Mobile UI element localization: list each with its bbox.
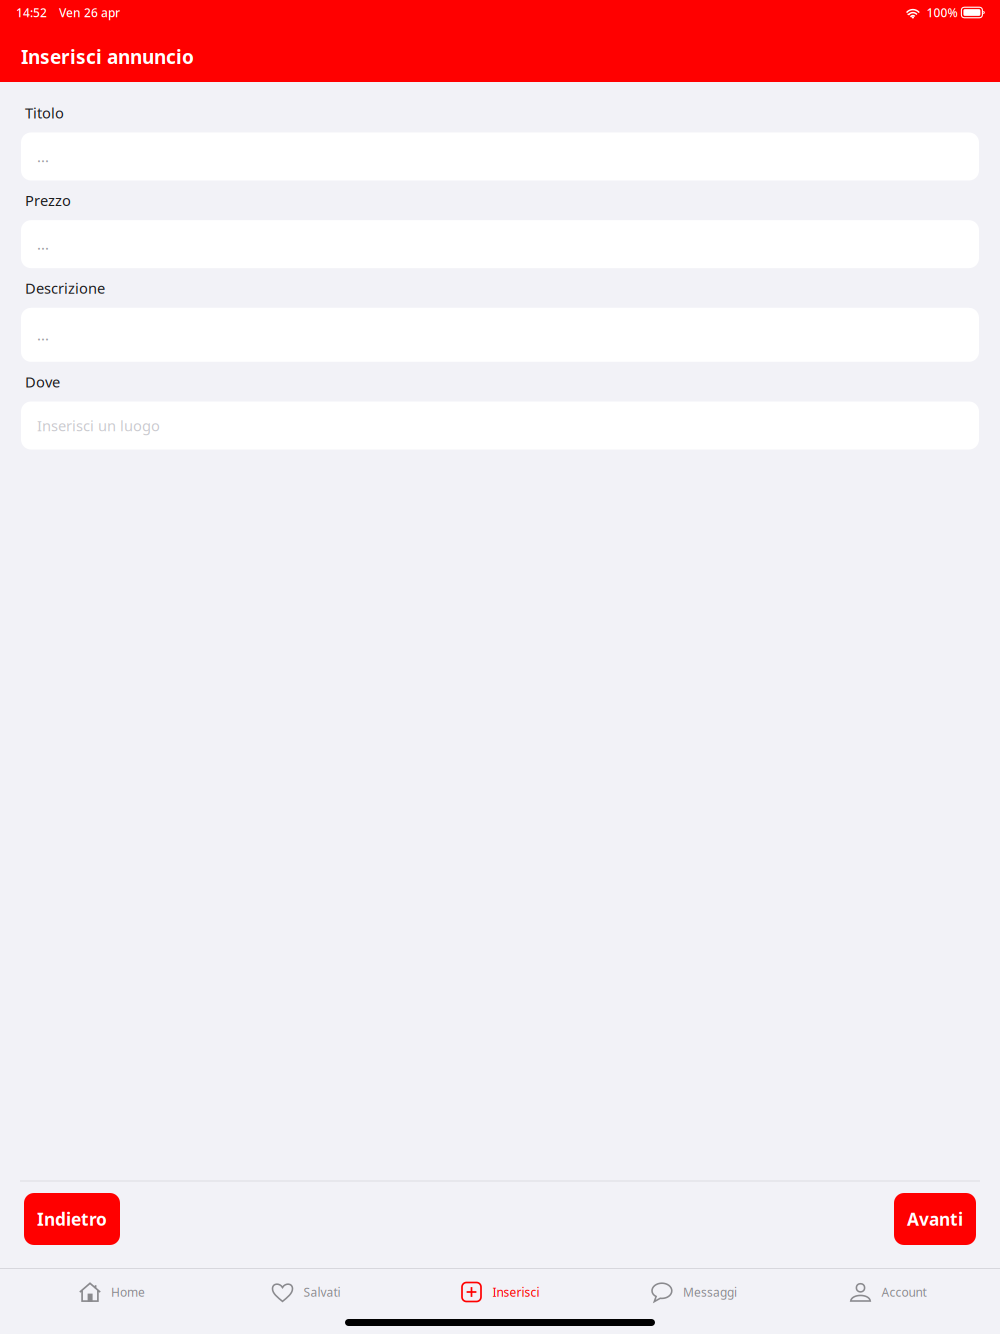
staticText: ... <box>37 147 49 166</box>
staticText: Home <box>111 1284 145 1300</box>
staticText: Inserisci <box>492 1284 539 1300</box>
staticText: Indietro <box>37 1207 107 1230</box>
staticText: Salvati <box>303 1284 340 1300</box>
staticText: 14:52 <box>16 4 47 20</box>
staticText: Descrizione <box>25 278 105 298</box>
staticText: Inserisci annuncio <box>21 43 194 69</box>
staticText: Avanti <box>907 1207 963 1230</box>
staticText: Inserisci un luogo <box>37 416 160 435</box>
staticText: Titolo <box>25 103 64 122</box>
staticText: Dove <box>25 372 60 391</box>
button[interactable]: Avanti <box>894 1193 976 1245</box>
staticText: 100% <box>926 4 957 20</box>
button[interactable]: Inserisci <box>403 1269 597 1315</box>
staticText: Messaggi <box>683 1284 737 1300</box>
staticText: ... <box>37 325 49 345</box>
button[interactable]: Salvati <box>209 1269 403 1315</box>
button[interactable]: Home <box>15 1269 209 1315</box>
button[interactable]: Indietro <box>24 1193 120 1245</box>
staticText: Account <box>881 1284 926 1300</box>
staticText: Ven 26 apr <box>59 4 120 20</box>
button[interactable]: Account <box>791 1269 985 1315</box>
staticText: Prezzo <box>25 191 71 210</box>
button[interactable]: Messaggi <box>597 1269 791 1315</box>
button[interactable]: Dove <box>21 401 979 449</box>
staticText: ... <box>37 234 49 254</box>
